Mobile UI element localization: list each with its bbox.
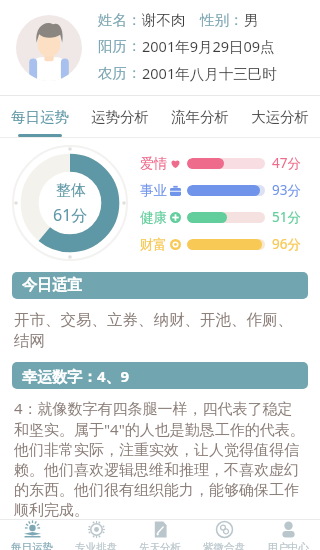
- button[interactable]: 事业: [140, 181, 301, 199]
- button[interactable]: 爱情: [140, 154, 301, 172]
- staticText: 阳历：: [98, 37, 142, 55]
- staticText: 性别：: [200, 11, 244, 29]
- staticText: 紫微合盘: [203, 541, 245, 550]
- button[interactable]: 紫微合盘: [192, 520, 256, 550]
- button[interactable]: 用户中心: [256, 520, 320, 550]
- staticText: 姓名：: [98, 11, 142, 29]
- staticText: 每日运势: [11, 108, 69, 126]
- staticText: 谢不肉: [142, 11, 186, 29]
- staticText: 93分: [272, 181, 301, 199]
- button[interactable]: 每日运势: [0, 520, 64, 550]
- staticText: 运势分析: [91, 108, 149, 126]
- staticText: 专业排盘: [75, 541, 117, 550]
- button[interactable]: 幸运数字：4、9: [12, 362, 308, 389]
- staticText: 事业: [140, 182, 167, 199]
- staticText: 47分: [272, 154, 301, 172]
- staticText: 4：就像数字有四条腿一样，四代表了稳定和坚实。属于"4"的人也是勤恳工作的代表。…: [14, 398, 307, 519]
- staticText: 2001年八月十三巳时: [142, 63, 277, 83]
- button[interactable]: 健康: [140, 208, 301, 226]
- button[interactable]: 先天分析: [128, 520, 192, 550]
- staticText: 每日运势: [11, 541, 53, 550]
- button[interactable]: 运势分析: [80, 96, 160, 137]
- staticText: 农历：: [98, 64, 142, 82]
- button[interactable]: 大运分析: [240, 96, 320, 137]
- staticText: 财富: [140, 236, 167, 253]
- button[interactable]: 专业排盘: [64, 520, 128, 550]
- staticText: 流年分析: [171, 108, 229, 126]
- staticText: 96分: [272, 235, 301, 253]
- staticText: 用户中心: [267, 541, 309, 550]
- staticText: 51分: [272, 208, 301, 226]
- staticText: 幸运数字：4、9: [22, 366, 130, 386]
- staticText: 爱情: [140, 155, 167, 172]
- button[interactable]: 每日运势: [0, 96, 80, 137]
- staticText: 男: [244, 11, 259, 29]
- staticText: 今日适宜: [22, 276, 82, 295]
- button[interactable]: Avatar: [16, 15, 82, 81]
- button[interactable]: 今日适宜: [12, 272, 308, 299]
- staticText: 2001年9月29日09点: [142, 36, 275, 56]
- staticText: 先天分析: [139, 541, 181, 550]
- staticText: 61分: [53, 204, 88, 226]
- staticText: 整体: [56, 181, 86, 200]
- staticText: 开市、交易、立券、纳财、开池、作厕、结网: [14, 310, 308, 350]
- staticText: 大运分析: [251, 108, 309, 126]
- staticText: 健康: [140, 209, 167, 226]
- button[interactable]: 流年分析: [160, 96, 240, 137]
- button[interactable]: 财富: [140, 235, 301, 253]
